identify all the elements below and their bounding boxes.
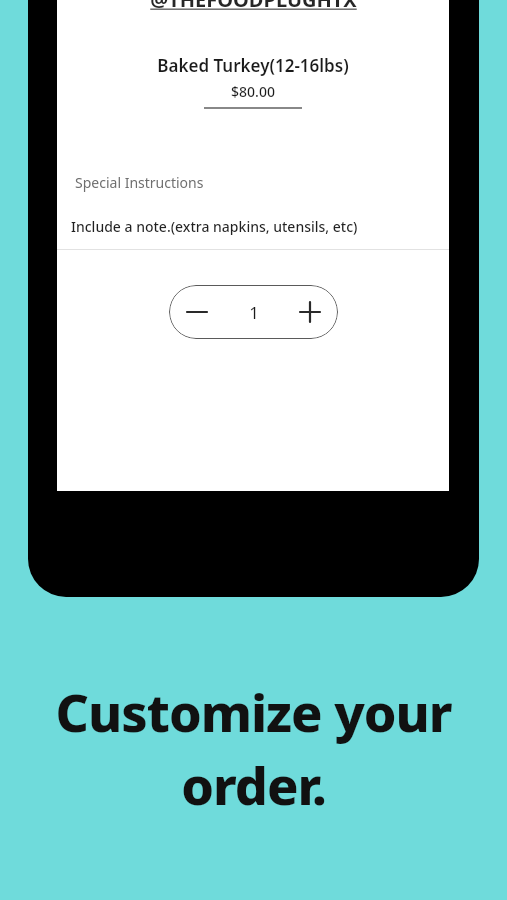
staticText: Baked Turkey(12-16lbs)	[157, 54, 349, 77]
staticText: Special Instructions	[75, 173, 204, 192]
staticText: order.	[181, 749, 326, 820]
button[interactable]: Include a note.(extra napkins, utensils,…	[57, 203, 449, 249]
staticText: Customize your	[55, 676, 452, 747]
staticText: Include a note.(extra napkins, utensils,…	[71, 217, 358, 236]
staticText: 1	[249, 301, 259, 324]
button[interactable]: Decrease quantity	[169, 285, 225, 339]
staticText: $80.00	[231, 82, 275, 101]
button[interactable]: Increase quantity	[282, 285, 338, 339]
staticText: @THEFOODPLUGHTX	[150, 0, 357, 13]
